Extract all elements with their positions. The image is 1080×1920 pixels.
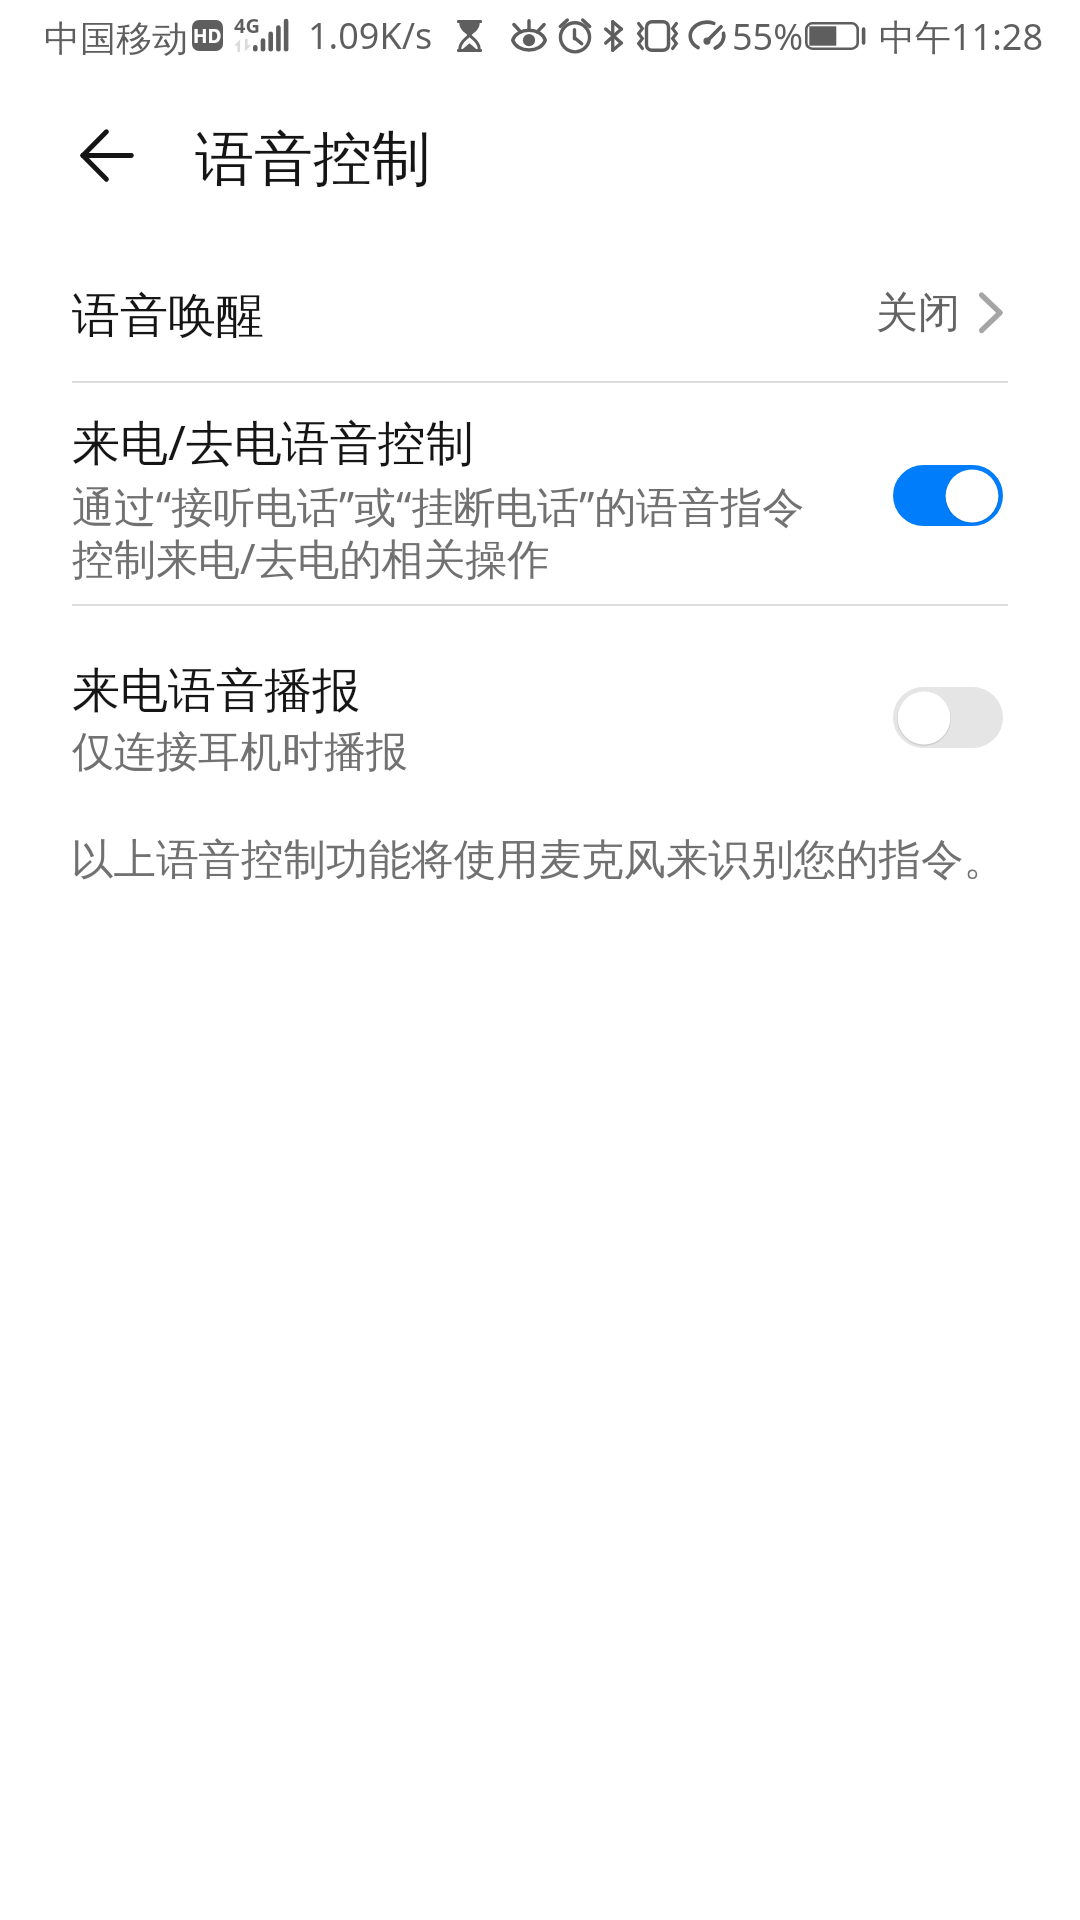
staticText: 语音唤醒 bbox=[72, 286, 264, 346]
staticText: 以上语音控制功能将使用麦克风来识别您的指令。 bbox=[71, 833, 1006, 887]
button[interactable]: 返回 bbox=[40, 118, 124, 198]
button[interactable]: 语音唤醒 bbox=[0, 249, 1080, 382]
staticText: 1.09K/s bbox=[308, 11, 433, 60]
button[interactable]: 来电语音播报开关，已关闭 bbox=[893, 687, 1003, 748]
staticText: 来电语音播报 bbox=[72, 661, 360, 721]
staticText: HD bbox=[193, 23, 222, 49]
staticText: 中国移动 bbox=[44, 16, 188, 61]
staticText: 通过“接听电话”或“挂断电话”的语音指令 控制来电/去电的相关操作 bbox=[72, 477, 805, 587]
button[interactable]: 来电语音播报 bbox=[0, 606, 1080, 796]
other: 打开语音唤醒设置 bbox=[960, 277, 1022, 353]
staticText: 仅连接耳机时播报 bbox=[72, 726, 408, 779]
button[interactable]: 来电/去电语音控制 bbox=[0, 383, 1080, 604]
staticText: 来电/去电语音控制 bbox=[72, 409, 474, 475]
staticText: 4G bbox=[234, 12, 260, 39]
staticText: 语音控制 bbox=[195, 122, 431, 196]
staticText: 中午11:28 bbox=[879, 12, 1044, 61]
staticText: 关闭 bbox=[876, 287, 960, 340]
staticText: 55% bbox=[732, 12, 804, 61]
button[interactable]: 来电/去电语音控制开关，已打开 bbox=[893, 465, 1003, 526]
